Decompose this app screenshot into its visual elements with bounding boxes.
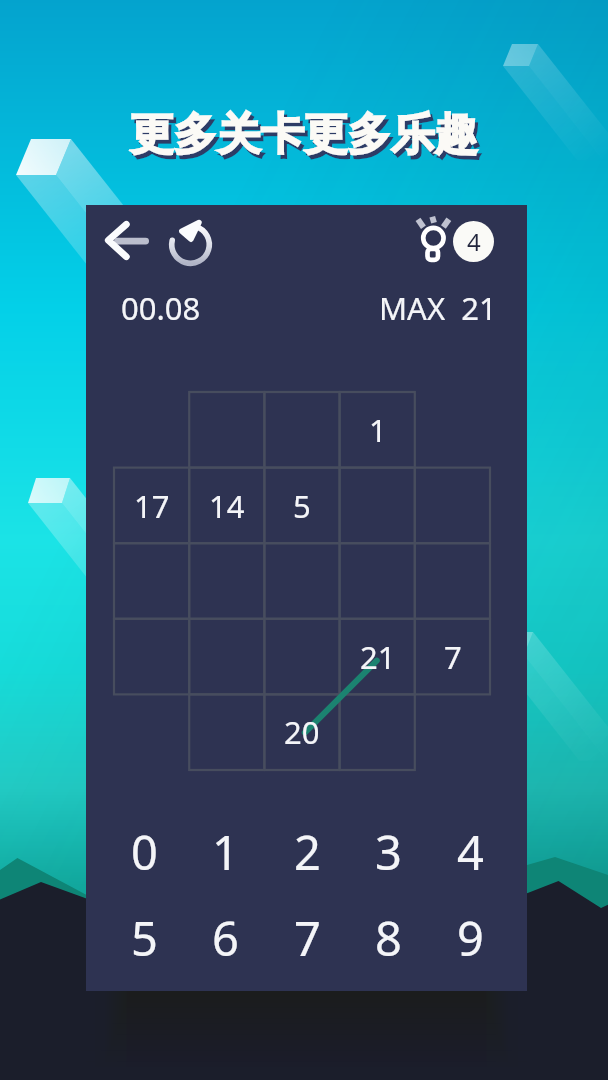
staticText: 7: [294, 906, 321, 970]
button[interactable]: 8: [352, 904, 424, 972]
staticText: 4: [457, 820, 484, 884]
staticText: MAX 21: [379, 287, 497, 329]
staticText: 1: [212, 820, 239, 884]
staticText: 20: [284, 711, 320, 753]
button[interactable]: 0: [108, 818, 180, 886]
staticText: 3: [375, 820, 402, 884]
staticText: 00.08: [121, 287, 201, 329]
staticText: 7: [444, 636, 462, 678]
button[interactable]: 9: [434, 904, 506, 972]
button[interactable]: 7: [415, 619, 490, 695]
staticText: 14: [209, 485, 245, 527]
staticText: 9: [457, 906, 484, 970]
staticText: 更多关卡更多乐趣: [133, 111, 481, 166]
staticText: 8: [375, 906, 402, 970]
button[interactable]: Back: [100, 214, 152, 266]
staticText: 21: [360, 636, 396, 678]
button[interactable]: 2: [271, 818, 343, 886]
staticText: 4: [467, 225, 481, 258]
button[interactable]: 1: [189, 818, 261, 886]
button[interactable]: Hint: [409, 212, 458, 260]
button[interactable]: 1: [340, 392, 415, 468]
button[interactable]: 5: [108, 904, 180, 972]
button[interactable]: 7: [271, 904, 343, 972]
staticText: 更多关卡更多乐趣: [130, 107, 478, 162]
button[interactable]: 20: [264, 694, 339, 770]
button[interactable]: 14: [189, 468, 264, 544]
staticText: 1: [369, 409, 387, 451]
button[interactable]: 6: [189, 904, 261, 972]
staticText: 2: [294, 820, 321, 884]
button[interactable]: 21: [340, 619, 415, 695]
staticText: 17: [134, 485, 170, 527]
staticText: 5: [131, 906, 158, 970]
staticText: 5: [293, 485, 311, 527]
button[interactable]: 4: [453, 221, 494, 262]
button[interactable]: 3: [352, 818, 424, 886]
staticText: 0: [131, 820, 158, 884]
button[interactable]: Undo: [164, 216, 216, 268]
staticText: 6: [212, 906, 239, 970]
button[interactable]: 4: [434, 818, 506, 886]
button[interactable]: 5: [264, 468, 339, 544]
button[interactable]: 17: [114, 468, 189, 544]
